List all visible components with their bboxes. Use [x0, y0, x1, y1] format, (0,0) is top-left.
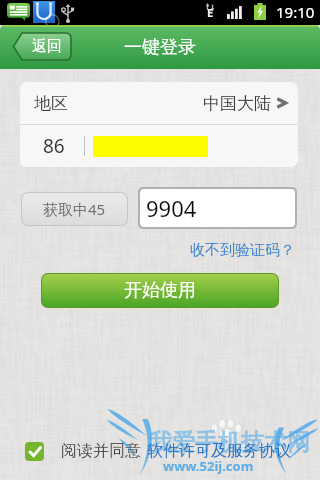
button[interactable]: 地区 [20, 82, 298, 124]
button[interactable]: 开始使用 [42, 274, 278, 307]
staticText: 9904 [146, 193, 197, 223]
button[interactable]: 阅读并同意 [25, 442, 44, 461]
staticText: 开始使用 [124, 279, 196, 302]
staticText: 软件许可及服务协议 [147, 441, 291, 461]
staticText: 中国大陆 [203, 93, 271, 114]
button[interactable]: 收不到验证码？ [190, 241, 295, 260]
staticText: 返回 [32, 37, 62, 56]
button[interactable]: 返回 [12, 32, 72, 61]
staticText: www.52ij.com [163, 457, 254, 475]
button[interactable]: 9904 [140, 189, 295, 227]
staticText: E [207, 5, 214, 20]
button[interactable]: 软件许可及服务协议 [147, 441, 291, 461]
button[interactable]: 获取中45 [22, 193, 127, 225]
staticText: 86 [43, 133, 65, 159]
staticText: 地区 [34, 93, 68, 114]
staticText: 获取中45 [43, 199, 106, 219]
staticText: 阅读并同意 [61, 441, 141, 461]
staticText: 收不到验证码？ [190, 241, 295, 260]
staticText: 我爱手机技术网 [149, 428, 310, 457]
staticText: 19:10 [276, 2, 315, 22]
staticText: 一键登录 [124, 36, 196, 59]
